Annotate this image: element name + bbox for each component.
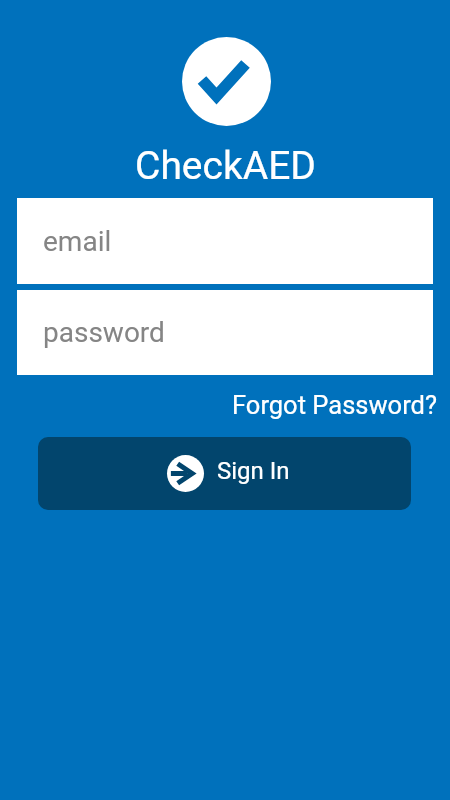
staticText: Sign In (217, 457, 290, 485)
staticText: email (43, 225, 112, 258)
button[interactable]: Forgot Password? (232, 390, 437, 420)
staticText: CheckAED (135, 143, 316, 189)
staticText: password (43, 316, 165, 349)
button[interactable]: email (17, 198, 433, 284)
button[interactable]: password (17, 290, 433, 375)
button[interactable]: Sign In (38, 437, 411, 510)
staticText: Forgot Password? (232, 390, 437, 420)
